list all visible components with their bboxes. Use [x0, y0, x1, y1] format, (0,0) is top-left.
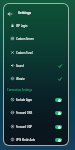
button[interactable]: Forward DNS: [4, 106, 67, 119]
staticText: Custom Tunel: [16, 51, 33, 55]
button[interactable]: Sound: [4, 59, 67, 72]
staticText: Forward DNS: [16, 111, 33, 115]
staticText: Sound: [16, 64, 24, 68]
staticText: Exclude Apps: [16, 98, 33, 102]
button[interactable]: Custom Server: [4, 32, 67, 45]
staticText: VIP Login: [16, 24, 28, 28]
button[interactable]: Custom Tunel: [4, 46, 67, 59]
staticText: Custom Server: [16, 37, 34, 41]
button[interactable]: VIP Login: [4, 19, 67, 32]
staticText: VPN Mode Auto: [16, 138, 36, 142]
staticText: Connection Settings: [7, 88, 32, 92]
button[interactable]: Vibrate: [4, 72, 67, 85]
staticText: Vibrate: [16, 77, 25, 81]
staticText: Settings: [18, 11, 32, 15]
staticText: Forward UDP: [16, 125, 33, 129]
button[interactable]: Back: [5, 7, 14, 19]
button[interactable]: Forward UDP: [4, 120, 67, 133]
button[interactable]: Exclude Apps: [4, 93, 67, 106]
button[interactable]: VPN Mode Auto: [4, 133, 67, 145]
